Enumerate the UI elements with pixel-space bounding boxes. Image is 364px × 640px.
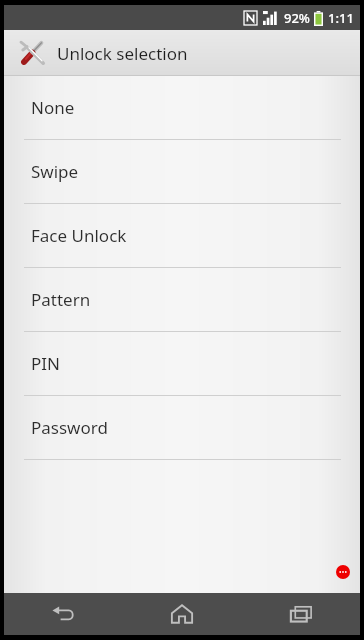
staticText: Unlock selection bbox=[57, 42, 188, 65]
staticText: Password bbox=[31, 416, 108, 439]
staticText: 92% bbox=[284, 9, 310, 27]
staticText: None bbox=[31, 96, 75, 119]
staticText: Swipe bbox=[31, 160, 79, 183]
staticText: 1:11 bbox=[328, 9, 354, 27]
button[interactable]: Home bbox=[122, 593, 241, 635]
button[interactable]: Back bbox=[4, 593, 122, 635]
button[interactable]: Face Unlock bbox=[4, 204, 360, 267]
staticText: Pattern bbox=[31, 288, 91, 311]
button[interactable]: None bbox=[4, 76, 360, 139]
button[interactable]: Swipe bbox=[4, 140, 360, 203]
button[interactable]: More options bbox=[336, 565, 350, 579]
staticText: Face Unlock bbox=[31, 224, 127, 247]
button[interactable]: Password bbox=[4, 396, 360, 459]
button[interactable]: PIN bbox=[4, 332, 360, 395]
button[interactable]: Recent apps bbox=[241, 593, 360, 635]
button[interactable]: Pattern bbox=[4, 268, 360, 331]
staticText: PIN bbox=[31, 352, 60, 375]
